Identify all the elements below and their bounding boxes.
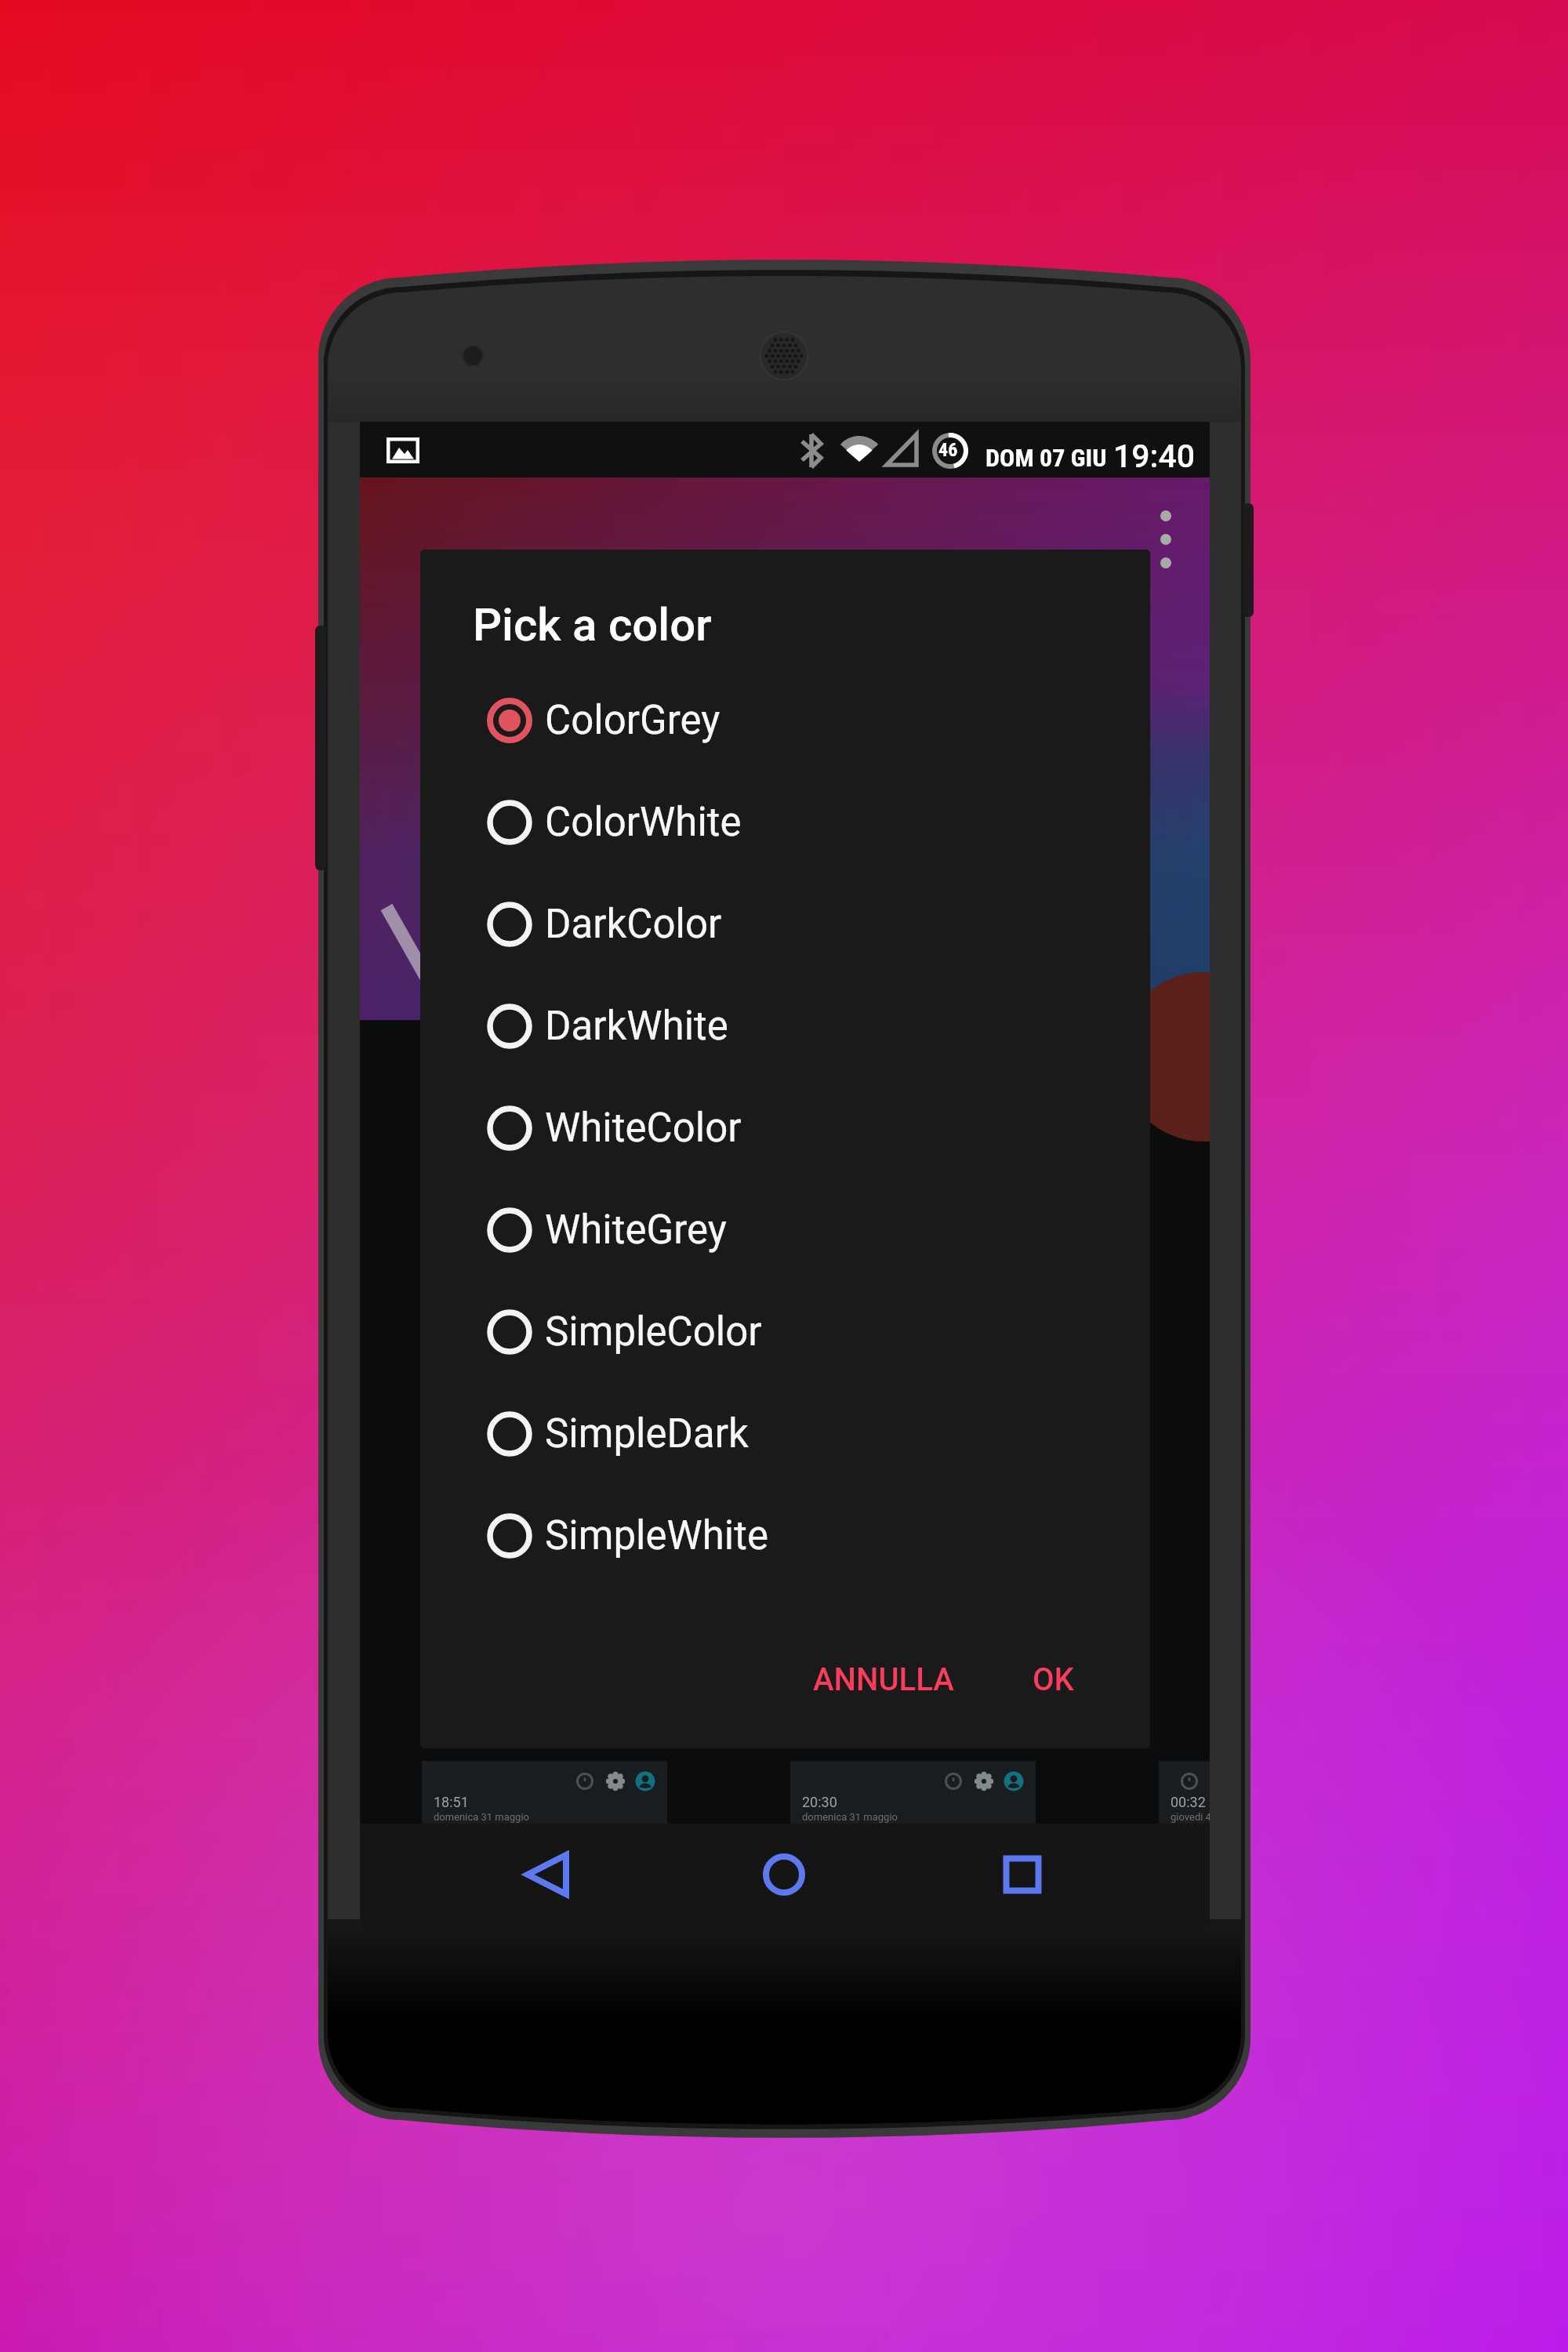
button[interactable]: Back	[511, 1839, 582, 1910]
staticText: ANNULLA	[813, 1661, 954, 1698]
button[interactable]: 00:32	[1159, 1761, 1210, 1863]
staticText: DarkColor	[545, 901, 722, 948]
staticText: giovedi 4 giugno	[1171, 1811, 1210, 1823]
staticText: DOM 07 GIU	[985, 443, 1107, 473]
button[interactable]: SimpleColor	[420, 1281, 1150, 1383]
button[interactable]: 20:30	[790, 1761, 1036, 1863]
staticText: 19:40	[1113, 437, 1196, 475]
staticText: 20:30	[802, 1794, 837, 1810]
staticText: DarkWhite	[545, 1003, 728, 1050]
button[interactable]: DarkWhite	[420, 975, 1150, 1077]
staticText: WhiteGrey	[545, 1207, 727, 1254]
staticText: SimpleColor	[545, 1308, 762, 1356]
button[interactable]: ColorWhite	[420, 771, 1150, 873]
staticText: SimpleDark	[545, 1410, 749, 1457]
button[interactable]: OK	[1011, 1642, 1096, 1717]
button[interactable]: ColorGrey	[420, 670, 1150, 771]
staticText: SimpleWhite	[545, 1512, 768, 1559]
staticText: 00:32	[1171, 1794, 1206, 1810]
button[interactable]: Recent apps	[987, 1839, 1058, 1910]
staticText: ColorWhite	[545, 799, 742, 846]
staticText: domenica 31 maggio	[802, 1811, 898, 1823]
button[interactable]: SimpleWhite	[420, 1485, 1150, 1587]
button[interactable]: DarkColor	[420, 873, 1150, 975]
button[interactable]: Home	[749, 1839, 819, 1910]
staticText: domenica 31 maggio	[434, 1811, 529, 1823]
button[interactable]: WhiteColor	[420, 1077, 1150, 1179]
staticText: Pick a color	[473, 598, 712, 652]
staticText: OK	[1033, 1661, 1074, 1698]
button[interactable]: WhiteGrey	[420, 1179, 1150, 1281]
staticText: WhiteColor	[545, 1105, 742, 1152]
button[interactable]: 18:51	[422, 1761, 667, 1863]
button[interactable]: More options	[1147, 510, 1185, 580]
staticText: ColorGrey	[545, 697, 720, 744]
staticText: 18:51	[434, 1794, 469, 1810]
staticText: 46	[938, 439, 958, 461]
button[interactable]: SimpleDark	[420, 1383, 1150, 1485]
button[interactable]: ANNULLA	[791, 1642, 976, 1717]
